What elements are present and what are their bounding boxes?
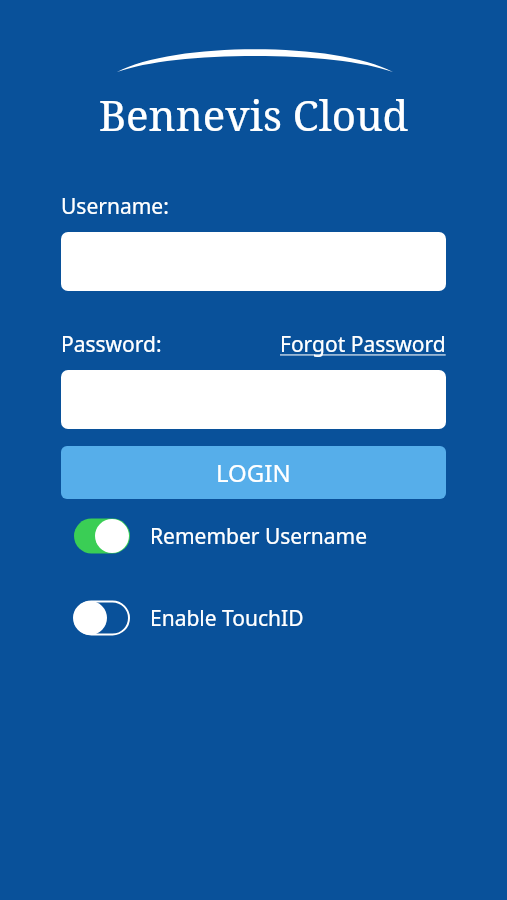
- button[interactable]: [61, 232, 446, 291]
- button[interactable]: On: [74, 516, 380, 556]
- button[interactable]: Forgot Password: [280, 330, 446, 359]
- other: Off: [74, 598, 130, 638]
- staticText: Remember Username: [150, 522, 368, 551]
- staticText: Password:: [61, 330, 162, 359]
- staticText: Username:: [61, 192, 169, 221]
- staticText: Forgot Password: [280, 330, 446, 359]
- button[interactable]: [61, 370, 446, 429]
- staticText: LOGIN: [216, 456, 291, 489]
- button[interactable]: Off: [74, 598, 316, 638]
- staticText: Enable TouchID: [150, 604, 304, 633]
- staticText: Bennevis Cloud: [0, 86, 507, 143]
- button[interactable]: LOGIN: [61, 446, 446, 499]
- other: On: [74, 516, 130, 556]
